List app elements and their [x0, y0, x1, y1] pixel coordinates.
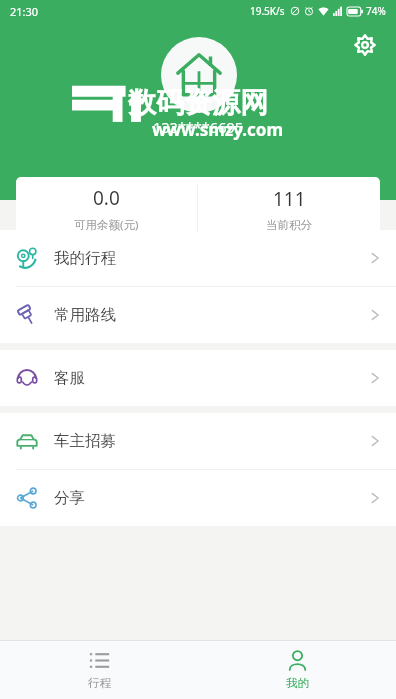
- button[interactable]: 分享: [0, 470, 396, 526]
- staticText: 行程: [88, 676, 111, 690]
- staticText: 车主招募: [54, 431, 116, 451]
- staticText: www.smzy.com: [152, 118, 284, 141]
- button[interactable]: 客服: [0, 350, 396, 406]
- button[interactable]: Avatar: [161, 37, 237, 113]
- staticText: 客服: [54, 368, 85, 388]
- staticText: 当前积分: [266, 218, 312, 232]
- button[interactable]: 车主招募: [0, 413, 396, 469]
- staticText: 我的行程: [54, 248, 116, 268]
- staticText: 可用余额(元): [74, 217, 139, 233]
- staticText: 132****6695: [153, 117, 244, 137]
- button[interactable]: 111: [198, 177, 380, 240]
- staticText: 21:30: [10, 4, 39, 19]
- staticText: 我的: [286, 676, 309, 690]
- button[interactable]: Settings: [348, 28, 382, 62]
- button[interactable]: 我的行程: [0, 230, 396, 286]
- staticText: 常用路线: [54, 305, 116, 325]
- button[interactable]: 我的: [198, 641, 396, 699]
- staticText: 0.0: [93, 185, 120, 211]
- staticText: 数码资源网: [128, 85, 268, 120]
- button[interactable]: 0.0: [16, 177, 197, 240]
- staticText: 分享: [54, 488, 85, 508]
- staticText: 111: [273, 186, 306, 212]
- staticText: 19.5K/s: [250, 4, 285, 18]
- staticText: 74%: [366, 4, 386, 18]
- button[interactable]: 行程: [0, 641, 198, 699]
- button[interactable]: 常用路线: [0, 287, 396, 343]
